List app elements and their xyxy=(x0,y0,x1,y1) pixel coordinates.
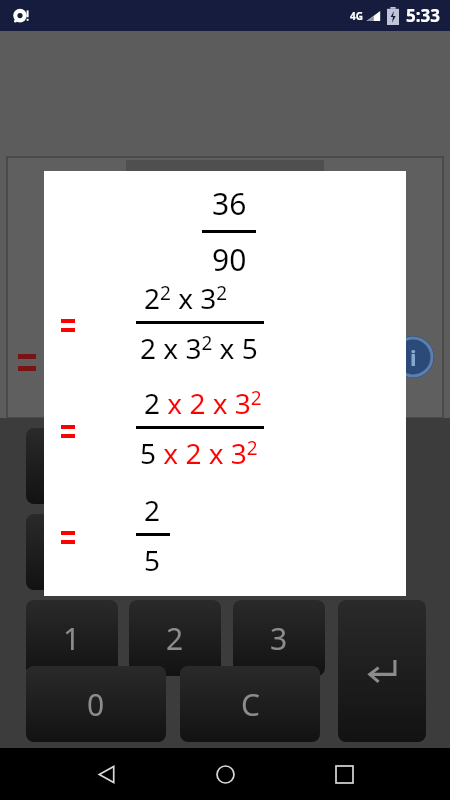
button[interactable]: 7 xyxy=(26,428,118,504)
staticText: 5 x 2 x 32 xyxy=(140,434,258,472)
staticText: 5 xyxy=(144,541,161,579)
button[interactable]: 2 xyxy=(129,600,221,676)
staticText: 2 x 2 x 32 xyxy=(144,384,262,422)
button[interactable]: 5 xyxy=(129,514,221,590)
staticText: 36 xyxy=(212,183,247,224)
staticText: 2 x 32 x 5 xyxy=(140,329,258,367)
button[interactable]: 4 xyxy=(26,514,118,590)
staticText: 8 xyxy=(166,446,184,487)
staticText: 4G xyxy=(350,9,363,23)
button[interactable]: Info xyxy=(392,336,434,378)
button[interactable]: Enter xyxy=(338,600,426,742)
button[interactable]: 9 xyxy=(233,428,325,504)
staticText: 90 xyxy=(212,239,247,280)
staticText: 1 xyxy=(63,618,81,659)
button[interactable]: C xyxy=(180,666,320,742)
staticText: 0 xyxy=(87,684,105,725)
button[interactable]: Back xyxy=(84,752,128,796)
staticText: 5:33 xyxy=(406,4,440,27)
staticText: 5 xyxy=(166,532,184,573)
staticText: 2 xyxy=(144,491,161,529)
staticText: 22 x 32 xyxy=(144,279,228,317)
staticText: 4 xyxy=(63,532,81,573)
staticText: i xyxy=(410,342,417,372)
button[interactable]: 3 xyxy=(233,600,325,676)
staticText: 2 xyxy=(166,618,184,659)
button[interactable]: 0 xyxy=(26,666,166,742)
button[interactable]: 1 xyxy=(26,600,118,676)
button[interactable]: 8 xyxy=(129,428,221,504)
button[interactable]: Recents xyxy=(322,752,366,796)
staticText: C xyxy=(241,684,260,725)
staticText: 3 xyxy=(270,618,288,659)
button[interactable]: 36 xyxy=(44,171,406,596)
button[interactable]: Home xyxy=(203,752,247,796)
